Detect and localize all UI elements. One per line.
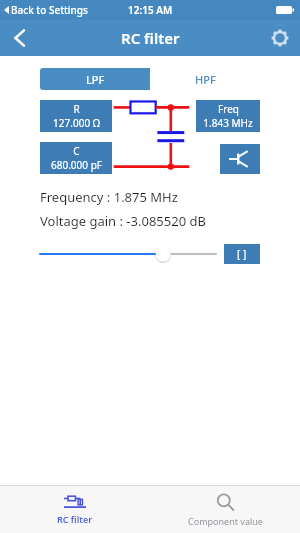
- button[interactable]: [ ]: [224, 244, 260, 264]
- staticText: Freq: [218, 102, 239, 116]
- button[interactable]: Settings: [260, 20, 300, 56]
- staticText: Back to Settings: [11, 3, 88, 17]
- staticText: RC filter: [121, 28, 180, 48]
- button[interactable]: Component value: [150, 486, 300, 533]
- button[interactable]: R: [40, 100, 112, 132]
- staticText: Frequency : 1.875 MHz: [40, 188, 178, 206]
- staticText: 1.843 MHz: [203, 116, 253, 130]
- staticText: RC filter: [57, 513, 93, 525]
- staticText: R: [73, 102, 80, 116]
- staticText: 127.000 Ω: [53, 116, 100, 130]
- staticText: LPF: [86, 72, 105, 87]
- button[interactable]: LPF: [40, 68, 150, 90]
- staticText: 680.000 pF: [51, 158, 102, 172]
- button[interactable]: HPF: [150, 68, 260, 90]
- button[interactable]: Transistor: [220, 144, 260, 174]
- staticText: 12:15 AM: [128, 3, 173, 17]
- button[interactable]: Freq: [196, 100, 260, 132]
- staticText: Voltage gain : -3.085520 dB: [40, 212, 206, 230]
- staticText: Component value: [188, 515, 263, 527]
- button[interactable]: RC filter: [0, 486, 150, 533]
- button[interactable]: Back: [0, 20, 40, 56]
- staticText: HPF: [195, 72, 216, 87]
- button[interactable]: C: [40, 142, 112, 174]
- button[interactable]: [40, 242, 216, 266]
- staticText: C: [73, 144, 80, 158]
- staticText: [ ]: [237, 247, 247, 261]
